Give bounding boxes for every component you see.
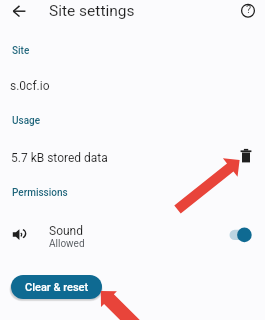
staticText: 5.7 kB stored data (11, 151, 108, 165)
staticText: Allowed (49, 238, 85, 250)
staticText: Clear & reset (25, 281, 89, 294)
button[interactable]: Help (237, 0, 259, 22)
button[interactable]: Back (7, 0, 29, 22)
button[interactable]: Clear & reset (11, 275, 102, 299)
button[interactable]: Sound (0, 214, 265, 320)
staticText: Usage (12, 115, 41, 127)
button[interactable]: Delete stored data (236, 146, 256, 166)
staticText: Site settings (49, 2, 135, 20)
staticText: s.0cf.io (10, 79, 50, 93)
staticText: Site (12, 45, 30, 57)
staticText: Sound (49, 224, 83, 238)
staticText: ? (246, 3, 252, 16)
staticText: Permissions (12, 187, 68, 199)
